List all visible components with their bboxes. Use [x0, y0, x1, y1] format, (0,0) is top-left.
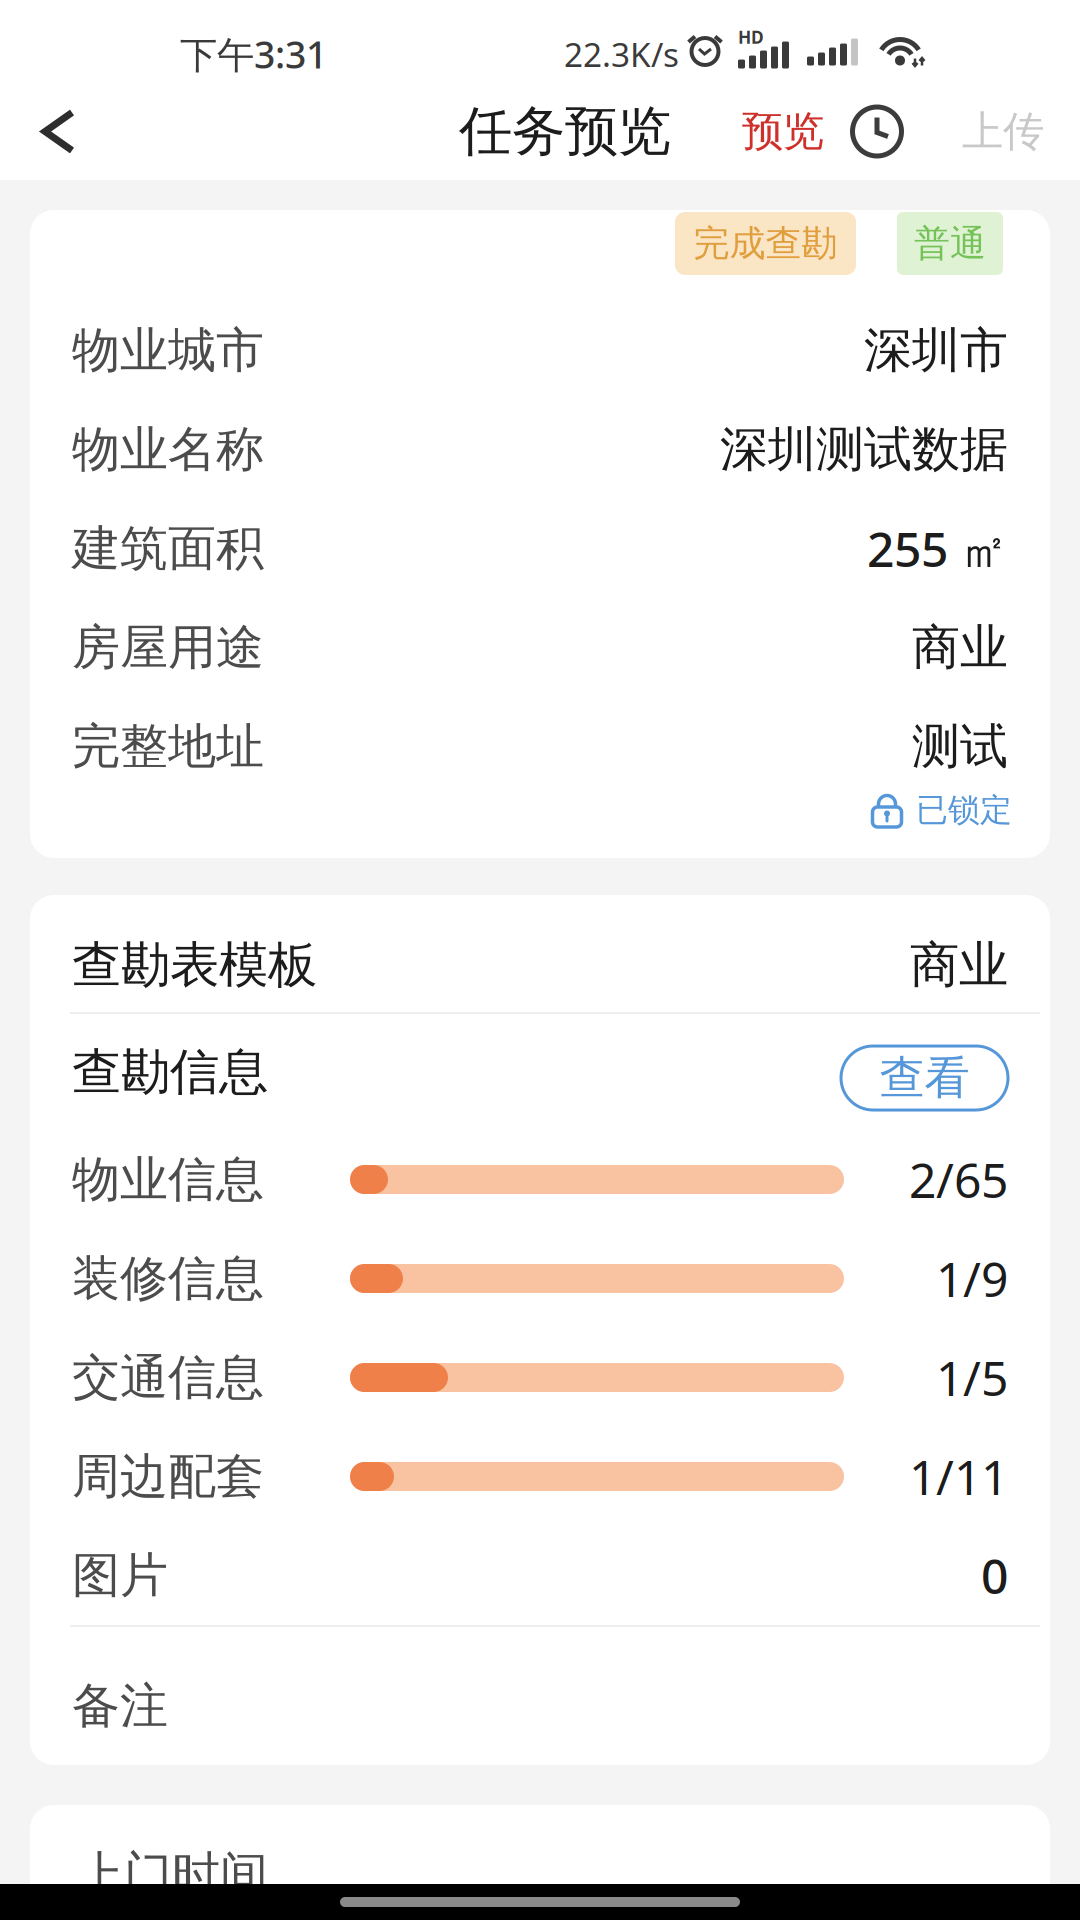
staticText: 查勘表模板	[72, 935, 317, 995]
staticText: 下午3:31	[180, 29, 327, 79]
staticText: 完成查勘	[693, 221, 837, 266]
staticText: 0	[981, 1544, 1008, 1607]
staticText: 物业信息	[72, 1150, 264, 1209]
staticText: 装修信息	[72, 1249, 264, 1308]
staticText: 物业名称	[72, 420, 264, 479]
staticText: 商业	[912, 618, 1008, 677]
staticText: 建筑面积	[72, 519, 264, 578]
staticText: 22.3K/s	[564, 32, 679, 76]
staticText: 深圳市	[864, 321, 1008, 380]
staticText: 2/65	[909, 1148, 1008, 1211]
staticText: 测试	[912, 717, 1008, 776]
staticText: 查勘信息	[72, 1042, 268, 1102]
staticText: 商业	[910, 935, 1008, 995]
staticText: 上传	[962, 106, 1044, 157]
button[interactable]: 历史记录	[824, 104, 904, 158]
staticText: 上门时间	[76, 1845, 268, 1904]
staticText: 查看	[879, 1050, 969, 1106]
staticText: 周边配套	[72, 1447, 264, 1506]
staticText: 预览	[742, 106, 824, 157]
staticText: 1/9	[936, 1247, 1008, 1310]
staticText: 深圳测试数据	[720, 420, 1008, 479]
staticText: 普通	[914, 221, 986, 266]
staticText: 完整地址	[72, 717, 264, 776]
staticText: 交通信息	[72, 1348, 264, 1407]
staticText: HD	[738, 25, 764, 48]
button[interactable]: 预览	[742, 106, 824, 157]
staticText: 任务预览	[459, 99, 671, 164]
button[interactable]: 上传	[904, 106, 1044, 157]
staticText: 物业城市	[72, 321, 264, 380]
button[interactable]: 查看	[841, 1046, 1008, 1110]
staticText: 已锁定	[916, 790, 1012, 830]
staticText: 1/11	[909, 1445, 1008, 1508]
staticText: 房屋用途	[72, 618, 264, 677]
staticText: 255 ㎡	[867, 516, 1008, 580]
staticText: 备注	[72, 1676, 168, 1735]
button[interactable]: 返回	[0, 108, 107, 154]
staticText: 1/5	[936, 1346, 1008, 1409]
staticText: 图片	[72, 1546, 168, 1605]
